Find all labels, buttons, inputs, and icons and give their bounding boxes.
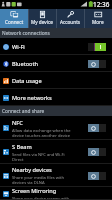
button[interactable]: Off (88, 60, 106, 68)
staticText: Bluetooth (12, 60, 38, 68)
button[interactable]: Off (88, 124, 106, 132)
staticText: Send files via NFC and Wi-Fi Direct (12, 152, 65, 162)
button[interactable]: More networks (0, 89, 112, 106)
staticText: Nearby devices (12, 166, 52, 174)
staticText: More networks (12, 94, 52, 102)
button[interactable]: Bluetooth (0, 55, 112, 72)
button[interactable]: Connect (0, 9, 28, 28)
staticText: Connect and share (2, 108, 45, 115)
staticText: Screen Mirroring (12, 187, 57, 195)
staticText: Allow data exchange when the device touc… (12, 128, 71, 138)
staticText: Accounts (60, 19, 81, 25)
staticText: More (92, 19, 104, 25)
button[interactable]: More (84, 9, 112, 28)
staticText: NFC (12, 119, 23, 127)
button[interactable]: Screen Mirroring (0, 187, 112, 200)
button[interactable]: Data usage (0, 72, 112, 89)
staticText: My device (31, 19, 53, 25)
button[interactable]: Off (88, 148, 106, 156)
button[interactable]: Wi-Fi (0, 38, 112, 55)
staticText: Network connections (2, 30, 50, 37)
button[interactable]: S Beam (0, 140, 112, 164)
staticText: Data usage (12, 77, 42, 85)
button[interactable]: Wi-Fi on (88, 43, 106, 51)
button[interactable]: NFC (0, 116, 112, 140)
staticText: Wi-Fi (12, 43, 25, 51)
staticText: Connect (5, 19, 24, 25)
staticText: Share your media files with devices via … (12, 175, 65, 185)
button[interactable]: Accounts (56, 9, 84, 28)
staticText: 12:36 (93, 0, 110, 9)
button[interactable]: Nearby devices (0, 164, 112, 187)
button[interactable]: Off (88, 172, 106, 180)
staticText: Share your device screen with another de… (12, 196, 70, 200)
button[interactable]: My device (28, 9, 56, 28)
staticText: S Beam (12, 143, 32, 151)
